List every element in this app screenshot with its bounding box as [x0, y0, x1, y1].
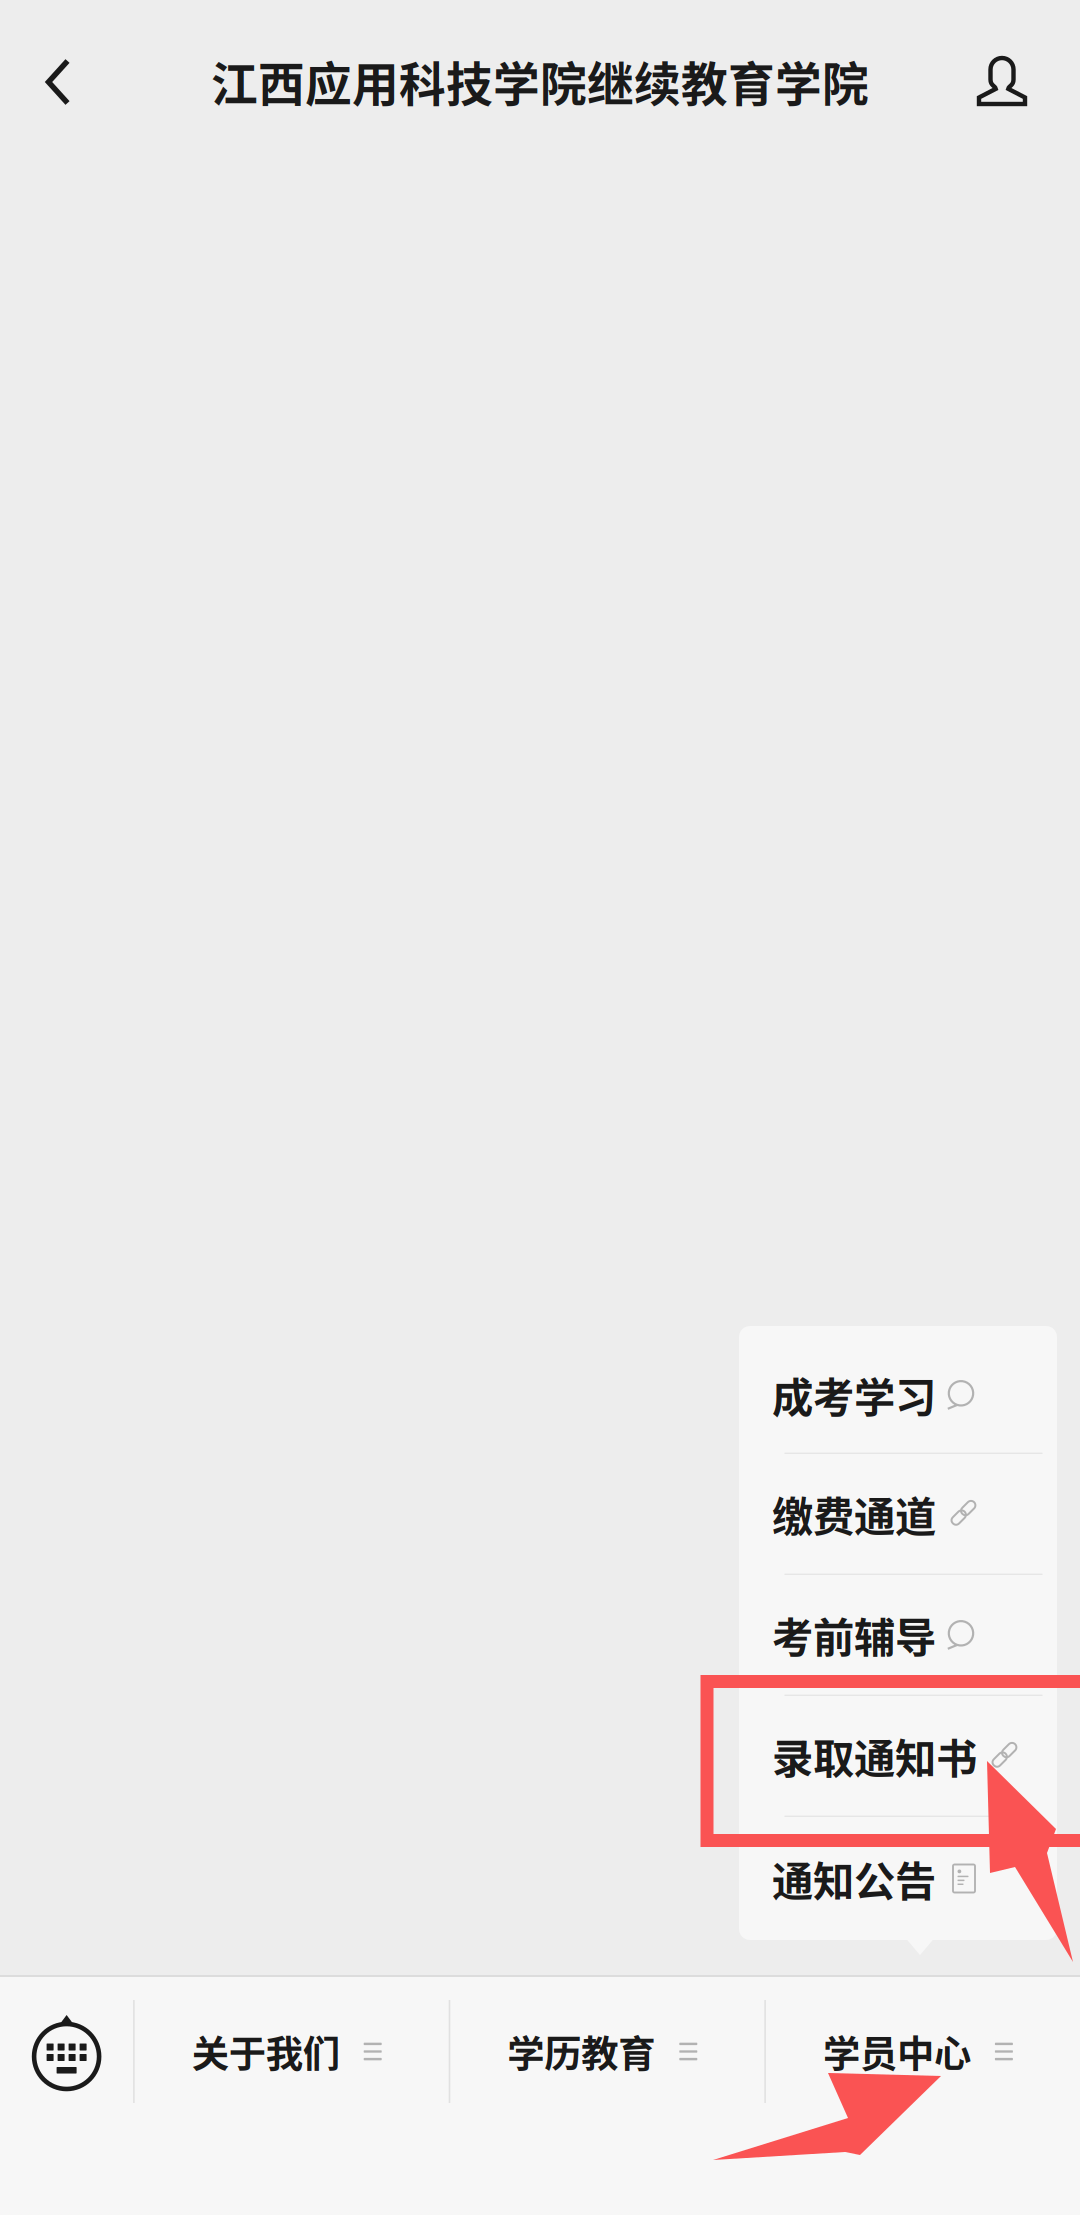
button[interactable]: 缴费通道	[739, 1454, 1057, 1575]
button[interactable]: Keyboard	[0, 1977, 133, 2126]
staticText: 成考学习	[772, 1365, 936, 1425]
button[interactable]: 考前辅导	[739, 1575, 1057, 1696]
staticText: 关于我们	[192, 2024, 340, 2079]
staticText: 学历教育	[507, 2024, 655, 2079]
button[interactable]: Account	[950, 0, 1054, 162]
staticText: 通知公告	[772, 1849, 936, 1908]
staticText: 考前辅导	[772, 1605, 936, 1665]
button[interactable]: Back	[2, 0, 114, 164]
button[interactable]: 录取通知书	[739, 1696, 1057, 1817]
button[interactable]: 通知公告	[739, 1817, 1057, 1940]
staticText: 学员中心	[823, 2024, 971, 2079]
button[interactable]: 学历教育	[450, 1977, 764, 2126]
button[interactable]: 关于我们	[135, 1977, 449, 2126]
staticText: 录取通知书	[772, 1726, 977, 1786]
button[interactable]: 成考学习	[739, 1326, 1057, 1454]
button[interactable]: 江西应用科技学院继续教育学院	[200, 0, 880, 163]
staticText: 江西应用科技学院继续教育学院	[211, 47, 869, 115]
button[interactable]: 学员中心	[766, 1977, 1080, 2126]
staticText: 缴费通道	[772, 1484, 936, 1544]
